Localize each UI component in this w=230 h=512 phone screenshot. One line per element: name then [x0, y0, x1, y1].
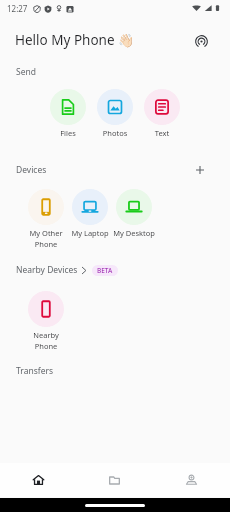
staticText: My Other Phone — [24, 228, 68, 249]
staticText: My Laptop — [68, 228, 112, 238]
button[interactable]: Files — [76, 463, 153, 497]
button[interactable]: My Other Phone — [24, 189, 68, 249]
staticText: Photos — [92, 128, 138, 138]
staticText: My Desktop — [112, 228, 156, 238]
button[interactable]: Photos — [92, 89, 138, 138]
staticText: Hello My Phone — [15, 31, 115, 49]
staticText: 👋🏻 — [118, 33, 135, 48]
staticText: Transfers — [16, 365, 54, 377]
button[interactable]: Add person — [153, 463, 230, 497]
button[interactable]: Nearby Devices — [16, 264, 118, 276]
staticText: Nearby Devices — [16, 264, 78, 276]
button[interactable]: My Desktop — [112, 189, 156, 238]
staticText: Text — [139, 128, 185, 138]
button[interactable]: My Laptop — [68, 189, 112, 238]
button[interactable]: Files — [45, 89, 91, 138]
staticText: Files — [45, 128, 91, 138]
button[interactable]: Text — [139, 89, 185, 138]
staticText: 12:27 — [7, 3, 28, 14]
button[interactable]: Home — [0, 463, 76, 497]
staticText: Nearby Phone — [24, 330, 68, 351]
staticText: BETA — [97, 266, 113, 275]
staticText: Devices — [16, 164, 47, 176]
button[interactable]: Nearby Phone — [24, 291, 68, 351]
staticText: Send — [16, 66, 36, 78]
button[interactable]: Nearby Share — [188, 28, 214, 54]
button[interactable]: Add device — [189, 159, 211, 181]
